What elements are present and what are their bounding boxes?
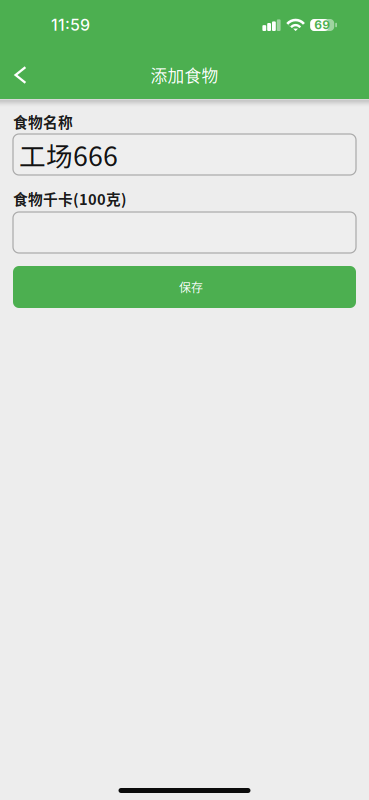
staticText: 食物名称 [13, 111, 73, 132]
staticText: 食物千卡(100克) [13, 188, 127, 209]
button[interactable]: 保存 [13, 266, 356, 308]
staticText: 保存 [179, 278, 203, 296]
button[interactable]: 食物千卡(100克) [13, 212, 356, 253]
staticText: 工场666 [19, 135, 118, 174]
staticText: 69 [314, 18, 330, 32]
staticText: 添加食物 [150, 63, 218, 87]
staticText: 11:59 [51, 15, 90, 35]
button[interactable]: 食物名称 [13, 134, 356, 175]
button[interactable]: Back [0, 51, 46, 99]
